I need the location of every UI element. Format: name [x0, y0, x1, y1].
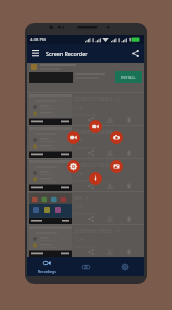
staticText: 4:38 PM [30, 37, 46, 43]
staticText: 20180312-163422 [74, 96, 113, 102]
button[interactable]: Info [89, 172, 102, 185]
button[interactable]: Share [85, 180, 96, 191]
button[interactable]: Trim [104, 180, 115, 191]
button[interactable]: Delete [123, 180, 134, 191]
button[interactable]: Trim [104, 114, 115, 125]
button[interactable]: Delete [123, 114, 134, 125]
button[interactable]: Tab [105, 257, 144, 276]
staticText: 1.2M [74, 138, 84, 143]
staticText: 20180309-197232 [74, 228, 113, 234]
button[interactable]: Trim [104, 213, 115, 224]
button[interactable]: Settings [67, 160, 80, 173]
button[interactable]: Delete [123, 147, 134, 158]
staticText: Screen Recorder [46, 50, 127, 57]
button[interactable]: Share [85, 213, 96, 224]
staticText: 1.2M [74, 171, 84, 176]
button[interactable]: Trim [104, 147, 115, 158]
button[interactable]: Share [85, 147, 96, 158]
button[interactable]: Menu [27, 45, 44, 62]
button[interactable]: Recordings [27, 257, 66, 276]
button[interactable]: Record screen [89, 120, 102, 133]
staticText: 20180312-163401 [74, 162, 113, 168]
staticText: 088 [74, 195, 82, 201]
button[interactable]: Screenshot [110, 131, 123, 144]
button[interactable]: Delete [123, 213, 134, 224]
button[interactable]: INSTALL [115, 71, 142, 83]
staticText: 3 minutes ago [74, 178, 97, 183]
button[interactable]: Delete [123, 246, 134, 257]
button[interactable]: Gallery [110, 160, 123, 173]
button[interactable]: Trim [104, 246, 115, 257]
button[interactable]: Share [85, 246, 96, 257]
button[interactable]: Tab [66, 257, 105, 276]
button[interactable]: Share [85, 114, 96, 125]
button[interactable]: Start recording [67, 131, 80, 144]
staticText: Recordings [38, 269, 56, 274]
button[interactable]: Share [127, 45, 144, 62]
staticText: INSTALL [121, 75, 136, 80]
staticText: 20180312-163348 [74, 129, 113, 135]
